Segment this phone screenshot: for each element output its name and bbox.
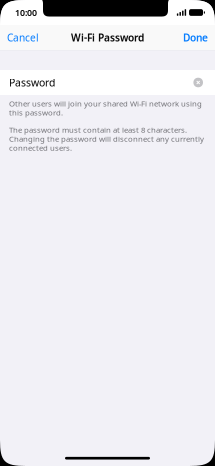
staticText: Done (183, 31, 208, 44)
staticText: Other users will join your shared Wi-Fi … (9, 99, 202, 117)
staticText: Wi-Fi Password (71, 31, 144, 44)
staticText: 10:00 (15, 7, 37, 18)
button[interactable]: Clear text (193, 78, 203, 87)
button[interactable]: Done (176, 26, 215, 49)
staticText: Cancel (7, 31, 39, 44)
staticText: Password (9, 76, 55, 89)
button[interactable]: Cancel (0, 26, 46, 49)
staticText: The password must contain at least 8 cha… (9, 125, 204, 152)
